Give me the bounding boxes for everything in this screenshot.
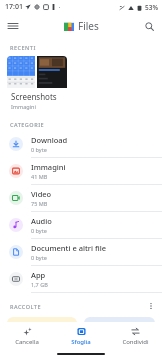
button[interactable]: Audio [0,212,162,238]
button[interactable]: Download [0,131,162,157]
staticText: 53% [145,3,158,12]
staticText: Sfoglia [71,338,91,346]
button[interactable]: Video [0,185,162,211]
staticText: Audio [31,216,52,226]
button[interactable]: Sfoglia [54,322,108,350]
staticText: 0 byte [31,254,47,261]
button[interactable] [84,317,155,353]
staticText: RACCOLTE [10,303,42,310]
staticText: RECENTI [10,44,36,51]
staticText: 17:01 [5,2,23,12]
button[interactable]: Screenshots [7,56,67,114]
staticText: CATEGORIE [10,121,45,128]
button[interactable]: Cerca [140,17,158,35]
staticText: Files [78,19,99,33]
staticText: App [31,270,46,280]
staticText: 0 byte [31,146,47,153]
staticText: Download [31,135,68,145]
button[interactable] [7,317,77,353]
staticText: Video [31,189,52,199]
staticText: 1,7 GB [31,281,48,288]
staticText: Screenshots [11,91,57,102]
button[interactable]: Condividi [108,322,162,350]
button[interactable]: Altre opzioni [144,299,158,313]
staticText: Cancella [15,338,39,346]
staticText: Immagini [11,103,36,110]
button[interactable]: Immagini [0,158,162,184]
staticText: Immagini [31,162,66,172]
staticText: 75 MB [31,200,48,207]
staticText: Documenti e altri file [31,243,107,253]
staticText: Condividi [122,338,149,346]
button[interactable]: Documenti e altri file [0,239,162,265]
button[interactable]: Cancella [0,322,54,350]
staticText: 0 byte [31,227,47,234]
button[interactable]: App [0,266,162,292]
button[interactable]: Menu [3,16,23,36]
staticText: 41 MB [31,173,48,180]
